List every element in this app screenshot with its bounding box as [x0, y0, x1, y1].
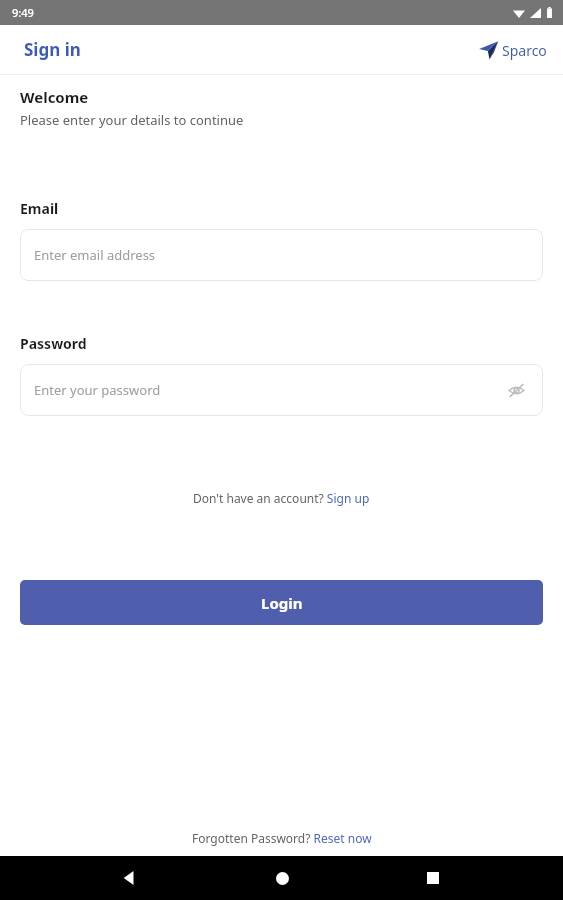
staticText: Welcome — [20, 87, 89, 107]
button[interactable]: Sparco logo — [474, 36, 551, 64]
button[interactable]: Recent apps — [411, 856, 455, 900]
staticText: Sign in — [24, 38, 81, 61]
button[interactable]: Home — [260, 856, 304, 900]
button[interactable]: Enter your password — [20, 364, 543, 416]
button[interactable]: Login — [20, 580, 543, 625]
staticText: Password — [20, 334, 87, 353]
staticText: Forgotten Password? Reset now — [192, 830, 372, 846]
button[interactable]: Enter email address — [20, 229, 543, 281]
button[interactable]: Sign in — [18, 34, 87, 65]
staticText: Login — [261, 593, 303, 613]
staticText: Email — [20, 199, 59, 218]
staticText: Please enter your details to continue — [20, 111, 244, 129]
button[interactable]: Back — [108, 856, 152, 900]
staticText: Sparco — [502, 41, 547, 60]
button[interactable]: Don't have an account? Sign up — [189, 488, 374, 508]
staticText: 9:49 — [12, 5, 34, 20]
staticText: Enter email address — [34, 246, 156, 264]
staticText: Don't have an account? Sign up — [193, 490, 370, 506]
button[interactable]: Show password — [503, 377, 529, 403]
button[interactable]: Forgotten Password? Reset now — [188, 828, 376, 848]
staticText: Enter your password — [34, 381, 161, 399]
